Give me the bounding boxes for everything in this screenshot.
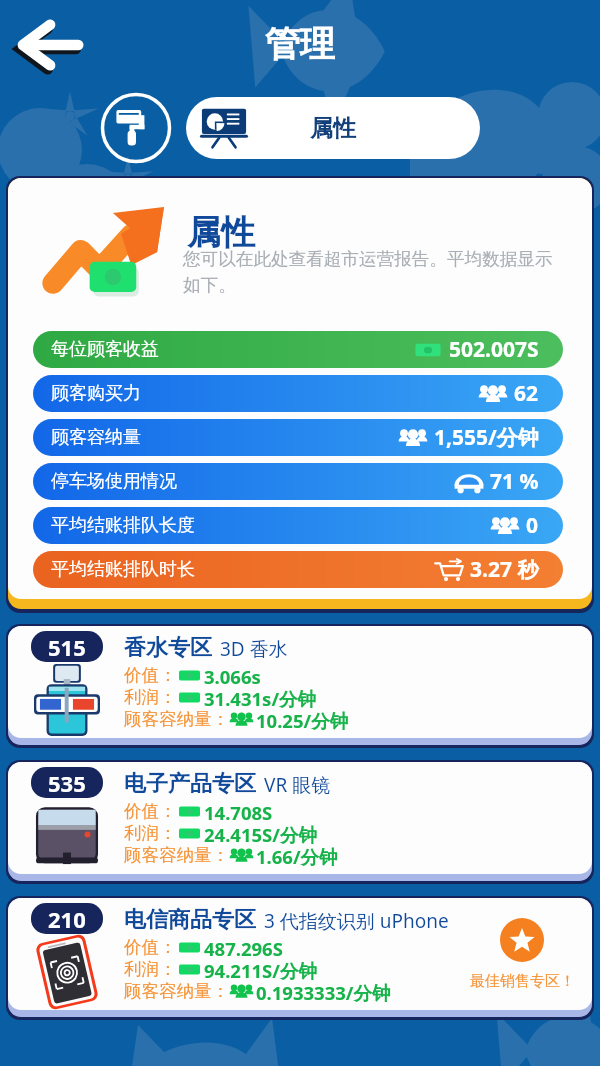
staticText: 最佳销售专区！ — [470, 972, 575, 991]
staticText: 属性 — [187, 211, 255, 254]
staticText: 3D 香水 — [220, 636, 288, 662]
button[interactable]: 每位顾客收益 — [33, 331, 563, 368]
staticText: 您可以在此处查看超市运营报告。平均数据显示如下。 — [183, 248, 559, 297]
staticText: 535 — [48, 768, 86, 798]
staticText: 平均结账排队时长 — [51, 558, 195, 581]
staticText: 价值： — [124, 664, 177, 686]
staticText: 62 — [514, 379, 539, 408]
staticText: 71 % — [490, 467, 539, 496]
staticText: 3 代指纹识别 uPhone — [264, 908, 449, 934]
staticText: 1,555/分钟 — [434, 423, 539, 452]
button[interactable]: 属性 — [186, 97, 480, 159]
button[interactable]: 顾客购买力 — [33, 375, 563, 412]
staticText: 14.708S — [204, 800, 273, 822]
button[interactable]: 平均结账排队长度 — [33, 507, 563, 544]
staticText: 停车场使用情况 — [51, 470, 177, 493]
staticText: 94.211S/分钟 — [204, 958, 317, 980]
button[interactable]: Decorate — [100, 92, 172, 164]
staticText: 210 — [48, 904, 86, 934]
button[interactable]: 535 — [6, 760, 594, 884]
staticText: 价值： — [124, 800, 177, 822]
button[interactable]: 210 — [6, 896, 594, 1020]
staticText: 24.415S/分钟 — [204, 822, 317, 844]
staticText: 31.431s/分钟 — [204, 686, 317, 708]
staticText: 平均结账排队长度 — [51, 514, 195, 537]
button[interactable]: 顾客容纳量 — [33, 419, 563, 456]
staticText: 3.066s — [204, 664, 261, 686]
staticText: 利润： — [124, 958, 177, 980]
staticText: VR 眼镜 — [264, 772, 331, 798]
staticText: 3.27 秒 — [470, 555, 539, 584]
staticText: 价值： — [124, 936, 177, 958]
staticText: 管理 — [0, 22, 600, 66]
staticText: 0 — [526, 511, 539, 540]
staticText: 515 — [48, 632, 86, 662]
staticText: 顾客容纳量： — [124, 844, 229, 866]
staticText: 0.1933333/分钟 — [256, 980, 391, 1002]
staticText: 属性 — [310, 114, 356, 143]
staticText: 487.296S — [204, 936, 283, 958]
button[interactable]: 停车场使用情况 — [33, 463, 563, 500]
staticText: 电子产品专区 — [124, 770, 256, 798]
staticText: 顾客容纳量： — [124, 980, 229, 1002]
button[interactable]: Back — [6, 6, 90, 84]
staticText: 502.007S — [449, 335, 539, 364]
staticText: 顾客购买力 — [51, 382, 141, 405]
staticText: 10.25/分钟 — [256, 708, 349, 730]
staticText: 1.66/分钟 — [256, 844, 338, 866]
staticText: 电信商品专区 — [124, 906, 256, 934]
staticText: 香水专区 — [124, 634, 212, 662]
staticText: 利润： — [124, 686, 177, 708]
staticText: 利润： — [124, 822, 177, 844]
staticText: 每位顾客收益 — [51, 338, 159, 361]
button[interactable]: 平均结账排队时长 — [33, 551, 563, 588]
button[interactable]: 515 — [6, 624, 594, 748]
staticText: 顾客容纳量： — [124, 708, 229, 730]
staticText: 顾客容纳量 — [51, 426, 141, 449]
